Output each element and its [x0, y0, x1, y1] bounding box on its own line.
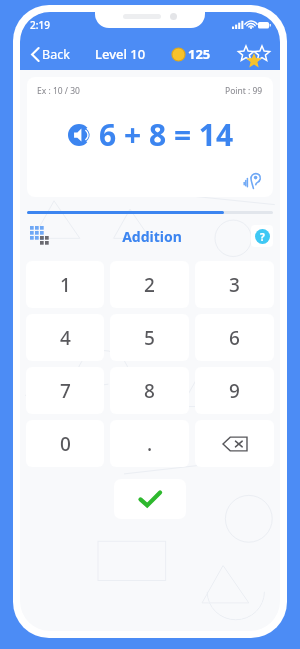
staticText: 3: [229, 272, 240, 298]
button[interactable]: 7: [26, 367, 104, 414]
button[interactable]: Stars earned: [237, 41, 271, 67]
staticText: 2: [144, 272, 155, 298]
button[interactable]: 5: [110, 314, 189, 361]
staticText: 7: [60, 378, 71, 404]
staticText: ?: [260, 230, 265, 244]
staticText: 5: [144, 325, 155, 351]
staticText: Point : 99: [225, 85, 263, 97]
button[interactable]: 125: [170, 43, 213, 65]
staticText: 6 + 8 = 14: [99, 114, 234, 155]
button[interactable]: Keypad mode: [27, 223, 53, 249]
button[interactable]: 9: [195, 367, 274, 414]
button[interactable]: 2: [110, 261, 189, 308]
staticText: Addition: [122, 227, 182, 246]
button[interactable]: 6: [195, 314, 274, 361]
button[interactable]: 3: [195, 261, 274, 308]
button[interactable]: Help: [251, 225, 273, 247]
staticText: 6: [229, 325, 240, 351]
staticText: 125: [188, 45, 211, 63]
staticText: Ex : 10 / 30: [37, 85, 80, 97]
button[interactable]: 1: [26, 261, 104, 308]
staticText: 0: [60, 431, 71, 457]
staticText: 1: [60, 272, 71, 298]
button[interactable]: Submit answer: [114, 479, 186, 519]
button[interactable]: .: [110, 420, 189, 467]
staticText: 2:19: [30, 18, 50, 32]
staticText: 8: [144, 378, 155, 404]
button[interactable]: Listen: [243, 170, 263, 190]
button[interactable]: Backspace: [195, 420, 274, 467]
staticText: 9: [229, 378, 240, 404]
button[interactable]: 4: [26, 314, 104, 361]
staticText: 4: [60, 325, 71, 351]
staticText: Back: [42, 46, 70, 63]
button[interactable]: Play sound: [66, 122, 92, 148]
button[interactable]: 0: [26, 420, 104, 467]
staticText: Level 10: [95, 45, 146, 63]
button[interactable]: Back: [29, 43, 72, 66]
button[interactable]: 8: [110, 367, 189, 414]
staticText: .: [147, 431, 153, 457]
